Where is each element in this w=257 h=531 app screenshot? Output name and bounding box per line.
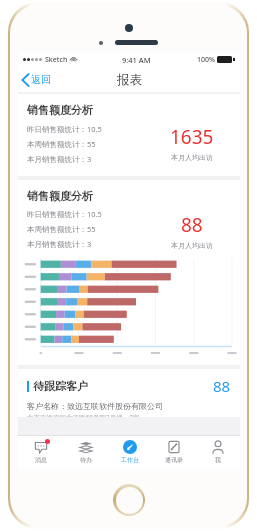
- button[interactable]: 销售额度分析: [18, 94, 240, 176]
- staticText: 销售额度分析: [27, 103, 93, 117]
- button[interactable]: 返回: [18, 70, 57, 89]
- button[interactable]: 销售额度分析: [18, 180, 240, 365]
- staticText: 88: [213, 376, 231, 396]
- other: Contacts: [167, 440, 181, 454]
- staticText: 客户名称：致远互联软件股份有限公司: [27, 401, 163, 411]
- staticText: 本月人均出访: [171, 153, 213, 162]
- staticText: 待办: [80, 456, 92, 464]
- staticText: 本月人均出访: [171, 241, 213, 250]
- staticText: 昨日销售额统计：10.5: [27, 124, 102, 134]
- staticText: 报表: [117, 72, 142, 88]
- button[interactable]: Todo: [63, 438, 108, 469]
- button[interactable]: Profile: [196, 438, 240, 469]
- staticText: 本周销售额统计：55: [27, 139, 96, 149]
- staticText: 昨日销售额统计：10.5: [27, 209, 102, 219]
- staticText: 工作台: [121, 456, 139, 464]
- button[interactable]: Messages: [18, 438, 63, 469]
- button[interactable]: Workbench: [108, 438, 152, 469]
- button[interactable]: Home: [113, 484, 145, 516]
- staticText: 9:41 AM: [122, 55, 151, 65]
- staticText: 我: [215, 456, 221, 464]
- staticText: 本月销售额统计：3: [27, 239, 92, 249]
- staticText: 北京市海淀区北清路68号院2号楼、0室: [27, 413, 140, 417]
- button[interactable]: 待跟踪客户: [18, 369, 240, 417]
- staticText: 1635: [170, 124, 214, 150]
- staticText: Sketch: [45, 55, 68, 65]
- button[interactable]: Contacts: [152, 438, 196, 469]
- staticText: 待跟踪客户: [33, 379, 88, 393]
- other: Messages: [34, 440, 48, 454]
- other: Profile: [211, 440, 225, 454]
- staticText: 88: [181, 212, 203, 238]
- staticText: 消息: [35, 456, 47, 464]
- staticText: 通讯录: [165, 456, 183, 464]
- other: Todo: [79, 440, 93, 454]
- staticText: 本周销售额统计：55: [27, 224, 96, 234]
- staticText: 100%: [197, 55, 215, 65]
- staticText: 销售额度分析: [27, 189, 93, 203]
- staticText: 返回: [31, 73, 51, 86]
- other: Workbench: [123, 440, 137, 454]
- staticText: 本月销售额统计：3: [27, 154, 92, 164]
